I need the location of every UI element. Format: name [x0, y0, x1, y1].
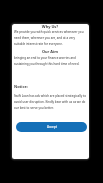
- staticText: Swift Loan has ads which are placed stra…: [14, 94, 86, 109]
- staticText: Our Aim: [14, 49, 86, 54]
- button[interactable]: Accept: [16, 122, 87, 132]
- staticText: bringing an end to your finance worries …: [14, 56, 86, 65]
- staticText: Why Us?: [14, 24, 86, 29]
- staticText: Accept: [47, 125, 57, 129]
- staticText: We provide you with quick services whene…: [14, 30, 86, 45]
- staticText: Notice:: [14, 84, 86, 89]
